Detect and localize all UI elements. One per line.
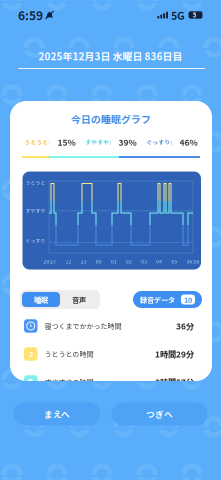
staticText: 今日の睡眠グラフ <box>71 112 151 126</box>
staticText: 1時間29分 <box>155 348 194 360</box>
button[interactable]: つぎへ <box>111 402 207 425</box>
button[interactable]: まえへ <box>13 402 100 425</box>
button[interactable]: 録音データ <box>133 291 202 308</box>
button[interactable]: 睡眠 <box>22 292 60 307</box>
staticText: 22 <box>66 258 72 265</box>
staticText: 06:58 <box>186 258 199 265</box>
staticText: つぎへ <box>146 408 173 420</box>
staticText: 36分 <box>176 320 194 332</box>
staticText: 20:27 <box>43 258 56 265</box>
staticText: 録音データ <box>140 294 175 305</box>
staticText: 00 <box>96 258 102 265</box>
staticText: うとうとの時間 <box>44 349 93 359</box>
button[interactable]: 寝つくまでかかった時間 <box>24 312 194 340</box>
staticText: 04 <box>156 258 162 265</box>
staticText: 5 <box>193 11 196 19</box>
button[interactable]: すやすやの時間 <box>24 368 194 396</box>
staticText: 寝つくまでかかった時間 <box>44 321 121 331</box>
staticText: 15% <box>57 136 75 148</box>
staticText: 05 <box>171 258 177 265</box>
staticText: 23 <box>81 258 87 265</box>
staticText: 6:59 <box>18 6 43 24</box>
button[interactable]: 音声 <box>60 292 98 307</box>
staticText: 3時間57分 <box>155 376 194 388</box>
staticText: 睡眠 <box>34 294 48 305</box>
staticText: 01 <box>111 258 117 265</box>
staticText: 5G <box>171 7 185 23</box>
staticText: ぐっすり: <box>146 138 172 146</box>
staticText: すやすや: <box>85 138 111 146</box>
staticText: 10 <box>184 294 192 305</box>
button[interactable]: Z <box>24 340 194 368</box>
staticText: すやすやの時間 <box>44 377 93 387</box>
staticText: 02 <box>126 258 132 265</box>
staticText: ぐっすり <box>25 237 45 244</box>
staticText: うとうと <box>25 179 45 186</box>
staticText: 音声 <box>72 294 86 305</box>
staticText: 03 <box>141 258 147 265</box>
staticText: 2025年12月3日 水曜日 836日目 <box>38 49 182 63</box>
staticText: 39% <box>118 136 136 148</box>
staticText: すやすや <box>25 207 45 214</box>
staticText: まえへ <box>44 408 70 420</box>
staticText: 46% <box>179 136 197 148</box>
staticText: うとうと: <box>24 138 50 146</box>
staticText: Z <box>29 349 33 359</box>
